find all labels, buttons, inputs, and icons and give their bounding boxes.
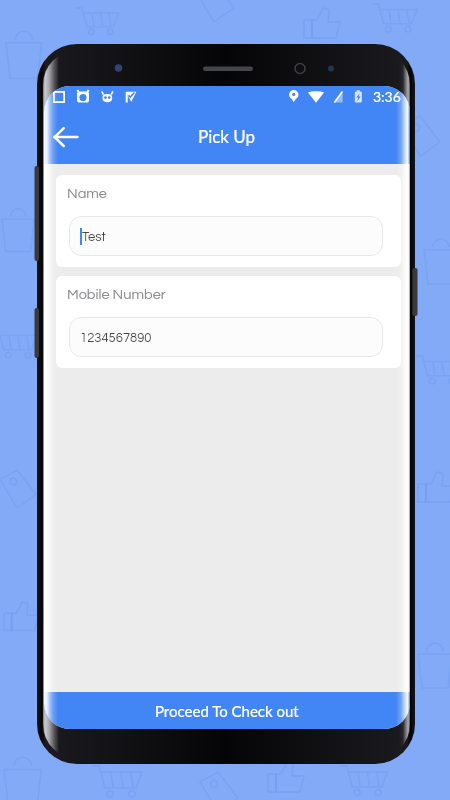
staticText: Proceed To Check out [155,702,299,720]
staticText: Pick Up [198,126,256,146]
button[interactable]: Proceed To Check out [44,692,410,729]
button[interactable]: Back [44,116,86,158]
staticText: Mobile Number [67,287,166,302]
button[interactable]: 1234567890 [69,317,383,357]
button[interactable]: Test [69,216,383,256]
staticText: Name [67,186,107,201]
staticText: 3:36 [373,88,401,105]
staticText: Test [82,230,106,243]
staticText: 1234567890 [80,331,152,344]
